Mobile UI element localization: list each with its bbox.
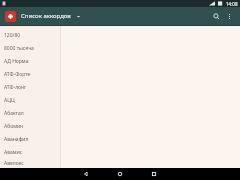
staticText: Список аккордов bbox=[21, 12, 71, 20]
staticText: АТФ-лонг bbox=[4, 84, 27, 91]
staticText: 8000 тысяча bbox=[4, 45, 34, 52]
button[interactable]: Список аккордов bbox=[21, 12, 209, 20]
staticText: 120/80 bbox=[4, 32, 21, 39]
staticText: Абактал bbox=[4, 110, 24, 117]
other: App icon bbox=[5, 11, 16, 22]
button[interactable]: АТФ-Форте bbox=[0, 68, 60, 81]
button[interactable]: Аванафил bbox=[0, 133, 60, 146]
button[interactable]: АД Норма bbox=[0, 55, 60, 68]
staticText: Авелокс bbox=[4, 160, 24, 167]
staticText: АД Норма bbox=[4, 58, 29, 65]
button[interactable]: Search bbox=[209, 9, 223, 23]
staticText: АЦЦ bbox=[4, 97, 15, 104]
button[interactable]: АЦЦ bbox=[0, 94, 60, 107]
button[interactable]: АТФ-лонг bbox=[0, 81, 60, 94]
button[interactable]: Home bbox=[103, 168, 137, 180]
staticText: Аванафил bbox=[4, 136, 29, 143]
button[interactable]: Абактал bbox=[0, 107, 60, 120]
staticText: АТФ-Форте bbox=[4, 71, 31, 78]
button[interactable]: Recent apps bbox=[137, 168, 171, 180]
button[interactable]: Back bbox=[69, 168, 103, 180]
button[interactable]: 8000 тысяча bbox=[0, 42, 60, 55]
button[interactable]: Абомин bbox=[0, 120, 60, 133]
staticText: Абомин bbox=[4, 123, 24, 130]
button[interactable]: 120/80 bbox=[0, 29, 60, 42]
staticText: 14:08 bbox=[226, 1, 238, 7]
button[interactable]: Авамис bbox=[0, 146, 60, 159]
button[interactable]: More options bbox=[223, 10, 235, 22]
button[interactable]: Авелокс bbox=[0, 159, 60, 168]
staticText: Авамис bbox=[4, 149, 23, 156]
